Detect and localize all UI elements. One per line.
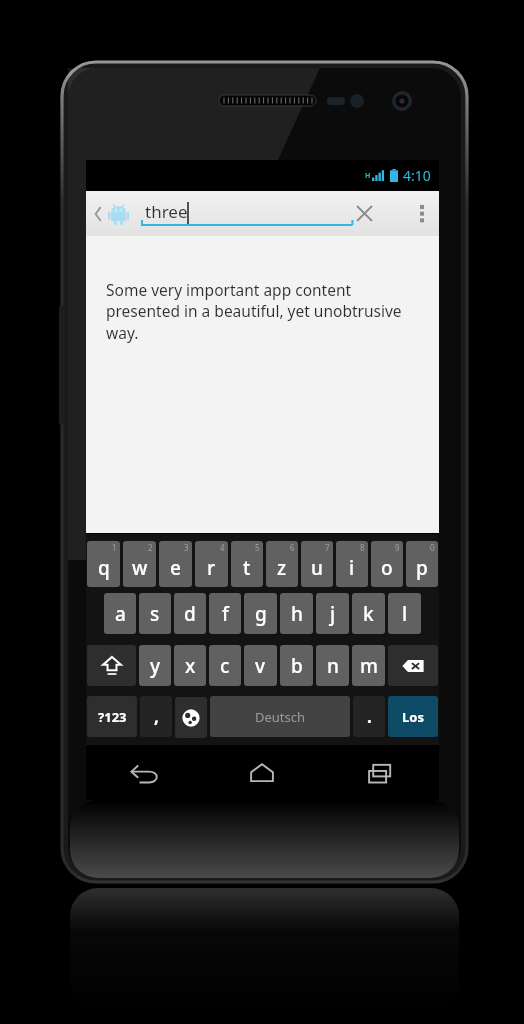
button[interactable]: h <box>280 593 313 634</box>
button[interactable]: ?123 <box>87 696 137 737</box>
button[interactable]: Shift <box>87 645 136 686</box>
staticText: p <box>416 555 428 581</box>
staticText: l <box>402 601 408 627</box>
button[interactable]: l <box>388 593 421 634</box>
staticText: z <box>277 555 287 581</box>
button[interactable]: x <box>174 645 206 686</box>
button[interactable]: More options <box>405 191 439 236</box>
button[interactable]: Back <box>86 745 203 800</box>
button[interactable]: , <box>140 696 172 737</box>
button[interactable]: m <box>352 645 385 686</box>
button[interactable]: b <box>280 645 313 686</box>
button[interactable]: Recent apps <box>321 745 439 800</box>
staticText: g <box>255 601 267 627</box>
button[interactable]: Up <box>91 197 132 231</box>
staticText: j <box>330 601 336 627</box>
staticText: Some very important app content presente… <box>106 279 427 344</box>
button[interactable]: a <box>104 593 136 634</box>
staticText: c <box>220 653 230 679</box>
staticText: e <box>170 555 181 581</box>
staticText: . <box>367 705 372 728</box>
staticText: h <box>291 601 303 627</box>
staticText: t <box>243 555 251 581</box>
button[interactable]: 0 <box>406 541 438 587</box>
staticText: 5 <box>255 542 260 553</box>
button[interactable]: 3 <box>159 541 192 587</box>
button[interactable]: n <box>316 645 349 686</box>
staticText: k <box>363 601 374 627</box>
button[interactable]: Home <box>203 745 321 800</box>
staticText: 0 <box>430 542 435 553</box>
button[interactable]: three <box>141 195 384 231</box>
button[interactable]: . <box>353 696 385 737</box>
button[interactable]: Deutsch <box>210 696 350 737</box>
staticText: b <box>291 653 303 679</box>
button[interactable]: 2 <box>123 541 156 587</box>
button[interactable]: 5 <box>231 541 263 587</box>
button[interactable]: g <box>244 593 277 634</box>
staticText: i <box>349 555 355 581</box>
staticText: 4 <box>220 542 225 553</box>
staticText: d <box>184 601 196 627</box>
staticText: 6 <box>290 542 295 553</box>
button[interactable]: v <box>244 645 277 686</box>
button[interactable]: Change language <box>175 697 207 738</box>
staticText: H <box>365 171 371 181</box>
staticText: Deutsch <box>255 708 306 726</box>
button[interactable]: Backspace <box>388 645 438 686</box>
button[interactable]: 9 <box>371 541 403 587</box>
button[interactable]: 8 <box>336 541 368 587</box>
staticText: r <box>207 555 216 581</box>
staticText: q <box>98 555 110 581</box>
button[interactable]: k <box>352 593 385 634</box>
staticText: y <box>150 653 161 679</box>
staticText: w <box>132 555 148 581</box>
button[interactable]: y <box>139 645 171 686</box>
staticText: 7 <box>325 542 330 553</box>
button[interactable]: 6 <box>266 541 298 587</box>
staticText: o <box>381 555 393 581</box>
staticText: a <box>115 601 126 627</box>
staticText: Los <box>402 708 424 726</box>
button[interactable]: 7 <box>301 541 333 587</box>
staticText: 9 <box>395 542 400 553</box>
button[interactable]: 4 <box>195 541 228 587</box>
staticText: 4:10 <box>403 166 431 185</box>
button[interactable]: c <box>209 645 241 686</box>
staticText: s <box>150 601 160 627</box>
staticText: ?123 <box>98 708 127 726</box>
button[interactable]: j <box>316 593 349 634</box>
staticText: n <box>327 653 339 679</box>
staticText: , <box>154 705 159 728</box>
button[interactable]: Clear search <box>344 191 384 236</box>
staticText: v <box>255 653 266 679</box>
staticText: 2 <box>148 542 153 553</box>
staticText: m <box>360 653 378 679</box>
button[interactable]: 1 <box>87 541 120 587</box>
staticText: three <box>145 200 188 223</box>
staticText: 8 <box>360 542 365 553</box>
staticText: x <box>185 653 196 679</box>
staticText: u <box>311 555 323 581</box>
staticText: f <box>222 601 229 627</box>
button[interactable]: f <box>209 593 241 634</box>
staticText: 3 <box>184 542 189 553</box>
staticText: 1 <box>112 542 117 553</box>
button[interactable]: s <box>139 593 171 634</box>
button[interactable]: d <box>174 593 206 634</box>
button[interactable]: Los <box>388 696 438 737</box>
